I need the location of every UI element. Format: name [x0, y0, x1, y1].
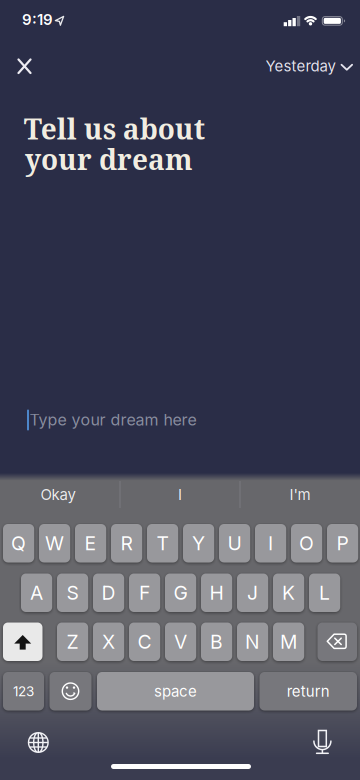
staticText: C [138, 630, 152, 653]
staticText: O [299, 532, 314, 555]
button[interactable]: N [237, 622, 268, 661]
button[interactable]: M [273, 622, 304, 661]
button[interactable]: O [291, 524, 322, 562]
button[interactable]: G [165, 573, 196, 612]
staticText: return [287, 682, 330, 700]
staticText: 9:19 [22, 10, 53, 29]
staticText: I [178, 485, 182, 503]
staticText: P [337, 532, 349, 555]
button[interactable]: Q [3, 524, 34, 562]
button[interactable]: V [165, 622, 196, 661]
staticText: V [174, 630, 187, 653]
staticText: Okay [40, 485, 75, 503]
button[interactable]: R [111, 524, 142, 562]
button[interactable]: E [75, 524, 106, 562]
staticText: E [85, 532, 97, 555]
staticText: Yesterday [265, 57, 335, 75]
button[interactable]: Z [57, 622, 88, 661]
button[interactable]: H [201, 573, 232, 612]
staticText: F [139, 581, 150, 604]
staticText: Z [67, 630, 79, 653]
staticText: J [247, 581, 258, 604]
button[interactable]: L [309, 573, 340, 612]
button[interactable]: X [93, 622, 124, 661]
button[interactable]: P [327, 524, 358, 562]
button[interactable]: Type your dream here [20, 402, 340, 438]
button[interactable]: K [273, 573, 304, 612]
button[interactable]: Delete [317, 622, 357, 661]
button[interactable]: return [259, 672, 357, 710]
staticText: D [102, 581, 116, 604]
button[interactable]: Dictate [308, 728, 336, 755]
staticText: Tell us about [24, 110, 205, 148]
staticText: I'm [289, 485, 310, 503]
button[interactable]: C [129, 622, 160, 661]
button[interactable]: 123 [3, 672, 44, 710]
staticText: L [319, 581, 330, 604]
staticText: Q [11, 532, 26, 555]
button[interactable]: W [39, 524, 70, 562]
button[interactable]: Y [183, 524, 214, 562]
staticText: B [210, 630, 223, 653]
button[interactable]: T [147, 524, 178, 562]
staticText: M [280, 630, 297, 653]
staticText: W [45, 532, 64, 555]
staticText: R [121, 532, 133, 555]
staticText: U [228, 532, 242, 555]
button[interactable]: Yesterday [265, 57, 352, 75]
button[interactable]: D [93, 573, 124, 612]
staticText: K [282, 581, 295, 604]
button[interactable]: Close [12, 53, 36, 78]
button[interactable]: U [219, 524, 250, 562]
staticText: T [157, 532, 169, 555]
button[interactable]: A [21, 573, 52, 612]
staticText: Type your dream here [29, 410, 196, 429]
staticText: H [210, 581, 224, 604]
button[interactable]: Okay [3, 474, 113, 514]
staticText: I [268, 532, 273, 555]
staticText: G [174, 581, 188, 604]
button[interactable]: space [97, 672, 254, 710]
staticText: A [30, 581, 43, 604]
button[interactable]: F [129, 573, 160, 612]
staticText: X [102, 630, 115, 653]
staticText: your dream [25, 140, 193, 178]
button[interactable]: S [57, 573, 88, 612]
staticText: space [154, 682, 197, 700]
staticText: Y [192, 532, 205, 555]
button[interactable]: B [201, 622, 232, 661]
button[interactable]: Emoji [49, 672, 91, 710]
button[interactable]: Shift [3, 622, 42, 661]
staticText: 123 [13, 683, 34, 699]
button[interactable]: I'm [245, 474, 355, 514]
staticText: N [245, 630, 260, 653]
staticText: S [67, 581, 79, 604]
button[interactable]: Next keyboard [24, 728, 52, 756]
button[interactable]: I [255, 524, 286, 562]
button[interactable]: J [237, 573, 268, 612]
button[interactable]: I [125, 474, 235, 514]
